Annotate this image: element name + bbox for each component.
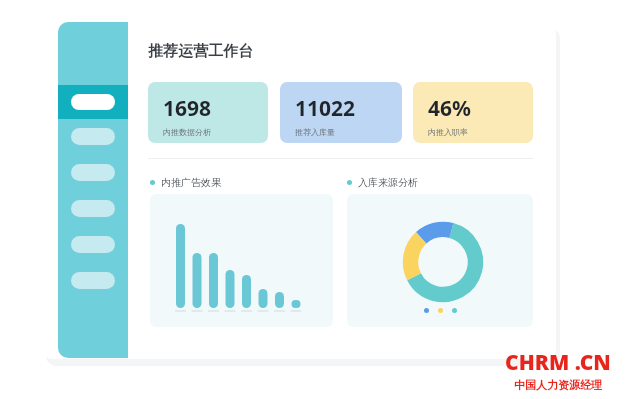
staticText: CHRM .CN bbox=[505, 348, 611, 377]
button[interactable]: Referral ad performance bar chart bbox=[150, 194, 333, 327]
button[interactable]: Menu item 4 bbox=[71, 200, 115, 217]
button[interactable]: 11022 bbox=[280, 82, 402, 143]
button[interactable]: Menu item 6 bbox=[71, 272, 115, 289]
staticText: 内推数据分析 bbox=[163, 127, 211, 137]
staticText: 推荐运营工作台 bbox=[148, 42, 253, 61]
staticText: 推荐入库量 bbox=[295, 127, 335, 137]
button[interactable]: Menu item 5 bbox=[71, 236, 115, 253]
button[interactable]: Inventory source donut chart bbox=[347, 194, 533, 327]
button[interactable]: 1698 bbox=[148, 82, 268, 143]
button[interactable]: Menu item 2 bbox=[71, 128, 115, 145]
staticText: 46% bbox=[428, 94, 471, 123]
button[interactable]: Menu item 3 bbox=[71, 164, 115, 181]
staticText: 内推广告效果 bbox=[161, 176, 221, 189]
button[interactable]: 46% bbox=[413, 82, 533, 143]
staticText: 内推入职率 bbox=[428, 127, 468, 137]
staticText: 中国人力资源经理 bbox=[514, 378, 602, 392]
staticText: 11022 bbox=[295, 94, 356, 123]
staticText: 入库来源分析 bbox=[358, 176, 418, 189]
button[interactable]: Dashboard bbox=[58, 85, 128, 119]
staticText: 1698 bbox=[163, 94, 212, 123]
